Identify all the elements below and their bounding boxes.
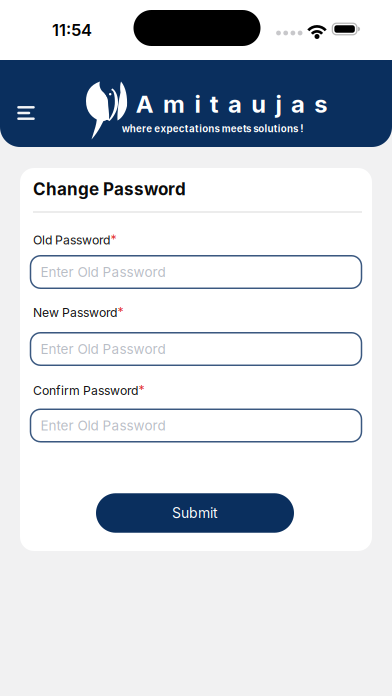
staticText: Enter Old Password — [40, 264, 165, 280]
staticText: Old Password — [33, 233, 110, 247]
button[interactable]: Menu — [14, 104, 38, 122]
staticText: Confirm Password — [33, 383, 138, 398]
staticText: Enter Old Password — [40, 341, 165, 357]
button[interactable]: Submit — [96, 493, 294, 533]
button[interactable]: Enter Old Password — [30, 409, 361, 442]
staticText: * — [117, 304, 123, 319]
staticText: Submit — [172, 504, 218, 521]
staticText: * — [110, 232, 116, 246]
button[interactable]: Enter Old Password — [30, 333, 361, 365]
staticText: Enter Old Password — [40, 417, 165, 434]
staticText: Amitaujas — [136, 89, 327, 118]
staticText: * — [138, 382, 144, 397]
staticText: New Password — [33, 305, 117, 320]
staticText: 11:54 — [52, 20, 92, 40]
staticText: Change Password — [33, 179, 186, 199]
staticText: where expectations meets solutions ! — [122, 123, 303, 134]
button[interactable]: Enter Old Password — [30, 256, 361, 288]
